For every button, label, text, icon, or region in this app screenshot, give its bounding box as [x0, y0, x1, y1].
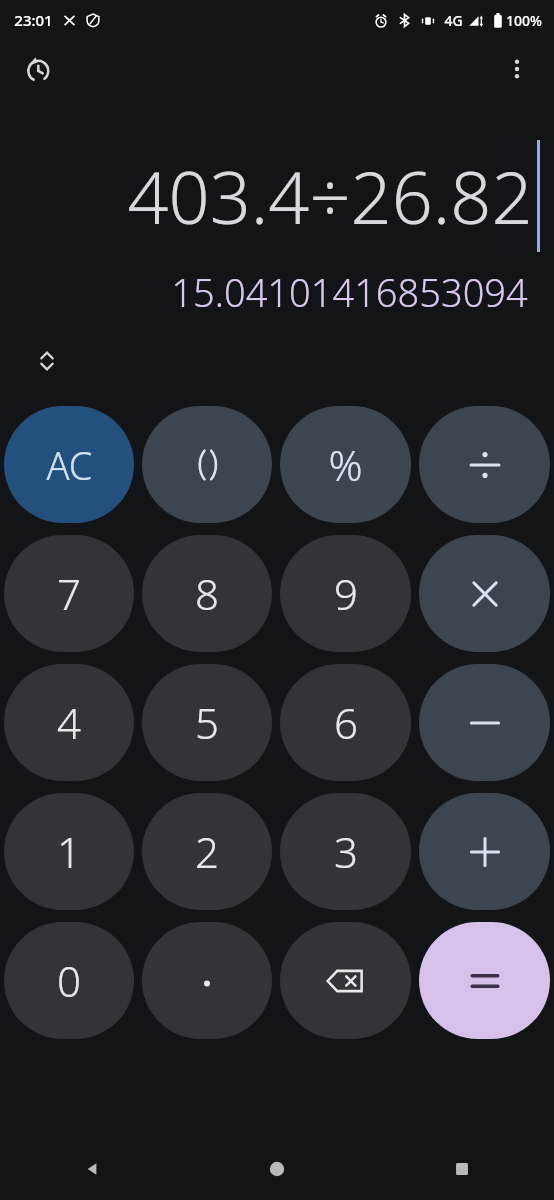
button[interactable]: Multiply	[419, 535, 550, 652]
button[interactable]: More options	[492, 44, 542, 94]
staticText: 3	[334, 823, 358, 880]
staticText: 5	[195, 694, 219, 751]
staticText: 100%	[506, 11, 542, 30]
button[interactable]: Divide	[419, 406, 550, 523]
staticText: 4	[57, 694, 81, 751]
button[interactable]: Equals	[419, 922, 550, 1039]
staticText: 0	[57, 952, 81, 1009]
button[interactable]: Home	[184, 1138, 369, 1200]
button[interactable]: 6	[280, 664, 411, 781]
button[interactable]: History	[12, 44, 62, 94]
button[interactable]: Add	[419, 793, 550, 910]
button[interactable]: Decimal point	[142, 922, 272, 1039]
staticText: 8	[195, 565, 219, 622]
staticText: 6	[334, 694, 358, 751]
button[interactable]: 3	[280, 793, 411, 910]
staticText: 4G	[444, 11, 463, 30]
button[interactable]: 7	[4, 535, 134, 652]
button[interactable]: 4	[4, 664, 134, 781]
button[interactable]: 1	[4, 793, 134, 910]
button[interactable]: Subtract	[419, 664, 550, 781]
button[interactable]: All clear	[4, 406, 134, 523]
button[interactable]: 2	[142, 793, 272, 910]
button[interactable]: 9	[280, 535, 411, 652]
staticText: 2	[195, 823, 219, 880]
staticText: 7	[57, 565, 81, 622]
button[interactable]: Recents	[369, 1138, 554, 1200]
staticText: %	[328, 436, 363, 493]
staticText: 1	[57, 823, 81, 880]
button[interactable]: Back	[0, 1138, 184, 1200]
staticText: AC	[46, 439, 93, 491]
button[interactable]: 0	[4, 922, 134, 1039]
button[interactable]: Backspace	[280, 922, 411, 1039]
staticText: 403.4÷26.82	[127, 147, 533, 245]
button[interactable]: Expand result	[24, 338, 70, 384]
staticText: 9	[334, 565, 358, 622]
staticText: 15.04101416853094	[171, 266, 528, 318]
staticText: 23:01	[14, 10, 53, 30]
button[interactable]: Percent	[280, 406, 411, 523]
button[interactable]: 5	[142, 664, 272, 781]
button[interactable]: Parentheses	[142, 406, 272, 523]
button[interactable]: 8	[142, 535, 272, 652]
